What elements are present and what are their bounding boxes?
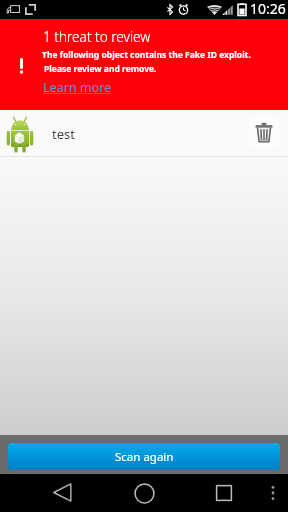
button[interactable]: Scan again <box>8 443 280 470</box>
staticText: Please review and remove. <box>44 63 157 75</box>
button[interactable]: Home <box>134 483 155 504</box>
staticText: The following object contains the Fake I… <box>42 49 251 61</box>
staticText: test <box>52 125 75 143</box>
staticText: 10:26 <box>250 0 286 18</box>
button[interactable]: Learn more <box>43 79 111 96</box>
button[interactable]: More options <box>264 483 281 503</box>
button[interactable]: Recent apps <box>214 483 234 503</box>
button[interactable]: test <box>0 110 288 156</box>
staticText: Scan again <box>115 449 174 465</box>
staticText: 1 threat to review <box>43 27 151 46</box>
button[interactable]: Delete <box>249 117 279 147</box>
button[interactable]: Back <box>49 479 75 505</box>
staticText: Learn more <box>43 79 111 96</box>
